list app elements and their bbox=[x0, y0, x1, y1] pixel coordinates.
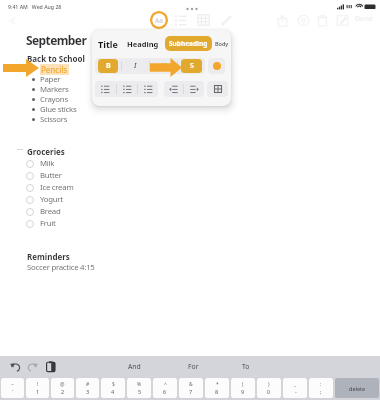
button[interactable]: Redo bbox=[27, 361, 39, 373]
staticText: # bbox=[86, 381, 90, 388]
staticText: B bbox=[106, 61, 111, 71]
button[interactable]: Yogurt bbox=[26, 194, 63, 205]
button[interactable]: : bbox=[309, 378, 333, 398]
staticText: - bbox=[295, 388, 297, 395]
button[interactable]: * bbox=[205, 378, 229, 398]
button[interactable]: @ bbox=[51, 378, 74, 398]
button[interactable]: delete bbox=[335, 378, 379, 398]
button[interactable]: Text format bbox=[150, 11, 168, 29]
staticText: delete bbox=[349, 385, 366, 392]
staticText: 9 bbox=[241, 388, 245, 395]
button[interactable]: Soccer practice 4:15 bbox=[27, 262, 95, 273]
staticText: ) bbox=[268, 381, 270, 388]
staticText: Groceries bbox=[27, 146, 65, 157]
button[interactable]: Markers bbox=[40, 84, 69, 95]
staticText: 6 bbox=[163, 388, 167, 395]
staticText: & bbox=[189, 381, 193, 388]
button[interactable]: Decrease indent bbox=[164, 81, 183, 97]
button[interactable]: List style 2 bbox=[117, 81, 137, 97]
staticText: : bbox=[320, 381, 322, 388]
button[interactable]: Ice cream bbox=[26, 182, 74, 193]
staticText: @ bbox=[60, 381, 65, 388]
button[interactable]: Milk bbox=[26, 158, 55, 169]
staticText: Markers bbox=[40, 84, 69, 95]
button[interactable]: % bbox=[127, 378, 151, 398]
staticText: * bbox=[216, 381, 219, 388]
button[interactable]: B bbox=[98, 59, 118, 73]
button[interactable]: I bbox=[125, 59, 146, 73]
button[interactable]: & bbox=[179, 378, 203, 398]
button[interactable]: Paper bbox=[40, 74, 61, 85]
staticText: 9:41 AM Wed Aug 28 bbox=[8, 3, 62, 10]
button[interactable]: ) bbox=[257, 378, 281, 398]
staticText: Paper bbox=[40, 74, 61, 85]
staticText: ` bbox=[12, 388, 14, 395]
button[interactable]: Undo bbox=[9, 361, 21, 373]
button[interactable]: ! bbox=[26, 378, 49, 398]
button[interactable]: _ bbox=[283, 378, 307, 398]
staticText: Pencils bbox=[41, 64, 68, 75]
button[interactable]: To bbox=[220, 356, 272, 377]
button[interactable]: Pencils bbox=[40, 64, 69, 75]
staticText: Done bbox=[355, 14, 374, 24]
button[interactable]: For bbox=[167, 356, 219, 377]
button[interactable]: Subheading bbox=[169, 39, 208, 48]
button[interactable]: Crayons bbox=[40, 94, 68, 105]
button[interactable]: $ bbox=[101, 378, 125, 398]
button[interactable]: U bbox=[153, 59, 174, 73]
staticText: $ bbox=[112, 381, 115, 388]
button[interactable]: Increase indent bbox=[184, 81, 204, 97]
button[interactable]: Glue sticks bbox=[40, 104, 77, 115]
button[interactable]: Heading bbox=[125, 39, 161, 49]
staticText: Ice cream bbox=[40, 182, 74, 193]
staticText: 3 bbox=[86, 388, 90, 395]
button[interactable]: ^ bbox=[153, 378, 177, 398]
button[interactable]: Text colour bbox=[208, 58, 225, 74]
staticText: To bbox=[242, 362, 250, 371]
button[interactable]: Butter bbox=[26, 170, 62, 181]
staticText: S bbox=[190, 61, 194, 71]
staticText: Heading bbox=[127, 39, 159, 49]
staticText: ^ bbox=[164, 381, 167, 388]
button[interactable]: S bbox=[181, 59, 202, 73]
button[interactable]: Paste bbox=[45, 361, 57, 373]
staticText: Crayons bbox=[40, 94, 68, 105]
staticText: ( bbox=[242, 381, 244, 388]
staticText: 5 bbox=[138, 388, 142, 395]
button[interactable]: List style 3 bbox=[138, 81, 158, 97]
button[interactable]: Title bbox=[96, 38, 120, 50]
button[interactable]: Share bbox=[276, 14, 289, 27]
button[interactable]: ~ bbox=[1, 378, 24, 398]
button[interactable]: Bread bbox=[26, 206, 61, 217]
button[interactable]: List style 1 bbox=[95, 81, 116, 97]
staticText: 0 bbox=[267, 388, 271, 395]
staticText: 1 bbox=[36, 388, 40, 395]
button[interactable]: New note bbox=[336, 14, 349, 27]
button[interactable]: Table bbox=[197, 14, 210, 27]
staticText: And bbox=[128, 362, 141, 371]
staticText: 4 bbox=[111, 388, 115, 395]
button[interactable]: # bbox=[76, 378, 99, 398]
staticText: Yogurt bbox=[40, 194, 63, 205]
button[interactable]: Markup bbox=[220, 14, 233, 27]
staticText: Scissors bbox=[40, 114, 68, 125]
button[interactable]: Body bbox=[215, 40, 229, 47]
staticText: Body bbox=[215, 40, 229, 47]
staticText: Soccer practice 4:15 bbox=[27, 262, 95, 273]
button[interactable]: ( bbox=[231, 378, 255, 398]
button[interactable]: Add attachment bbox=[297, 14, 310, 27]
staticText: Butter bbox=[40, 170, 62, 181]
staticText: Glue sticks bbox=[40, 104, 77, 115]
button[interactable]: Insert table bbox=[207, 81, 228, 97]
button[interactable]: Done bbox=[355, 14, 374, 24]
staticText: Aa bbox=[155, 16, 163, 25]
button[interactable]: Scissors bbox=[40, 114, 68, 125]
button[interactable]: Checklist bbox=[174, 14, 187, 27]
staticText: Subheading bbox=[169, 39, 208, 48]
staticText: U bbox=[161, 61, 167, 71]
button[interactable]: Fruit bbox=[26, 218, 56, 229]
button[interactable]: And bbox=[108, 356, 160, 377]
staticText: 2 bbox=[61, 388, 65, 395]
button[interactable]: Delete bbox=[316, 14, 329, 27]
